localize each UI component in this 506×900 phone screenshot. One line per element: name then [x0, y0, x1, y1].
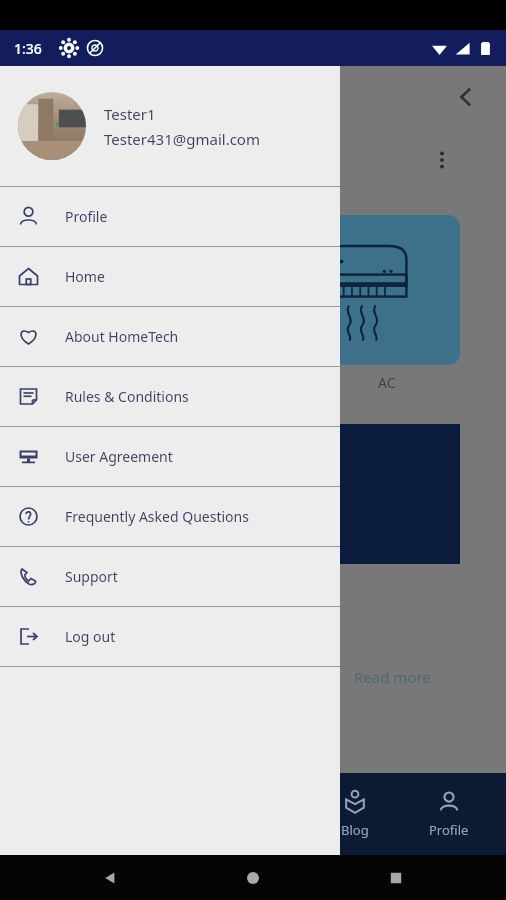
- button[interactable]: Tester1: [0, 66, 340, 186]
- button[interactable]: Log out: [0, 607, 340, 666]
- button[interactable]: Home: [0, 247, 340, 306]
- button[interactable]: User Agreement: [0, 427, 340, 486]
- button[interactable]: Rules & Conditions: [0, 367, 340, 426]
- button[interactable]: Read more: [354, 667, 431, 687]
- staticText: Home: [65, 267, 105, 286]
- button[interactable]: More options: [420, 138, 464, 182]
- button[interactable]: Frequently Asked Questions: [0, 487, 340, 546]
- staticText: Support: [65, 567, 118, 586]
- staticText: Blog: [341, 821, 369, 839]
- button[interactable]: Back: [440, 71, 492, 123]
- button[interactable]: [255, 215, 460, 365]
- staticText: Log out: [65, 627, 116, 646]
- button[interactable]: Profile: [410, 773, 488, 855]
- button[interactable]: Blog: [316, 773, 394, 855]
- staticText: Profile: [65, 207, 108, 226]
- staticText: Frequently Asked Questions: [65, 507, 249, 526]
- staticText: User Agreement: [65, 447, 173, 466]
- staticText: Profile: [429, 821, 469, 839]
- staticText: Rules & Conditions: [65, 387, 189, 406]
- button[interactable]: About HomeTech: [0, 307, 340, 366]
- staticText: About HomeTech: [65, 327, 179, 346]
- staticText: 1:36: [14, 39, 42, 58]
- staticText: Tester1: [104, 104, 156, 124]
- button[interactable]: Support: [0, 547, 340, 606]
- button[interactable]: Profile: [0, 187, 340, 246]
- staticText: Tester431@gmail.com: [104, 129, 260, 149]
- staticText: AC: [378, 373, 396, 392]
